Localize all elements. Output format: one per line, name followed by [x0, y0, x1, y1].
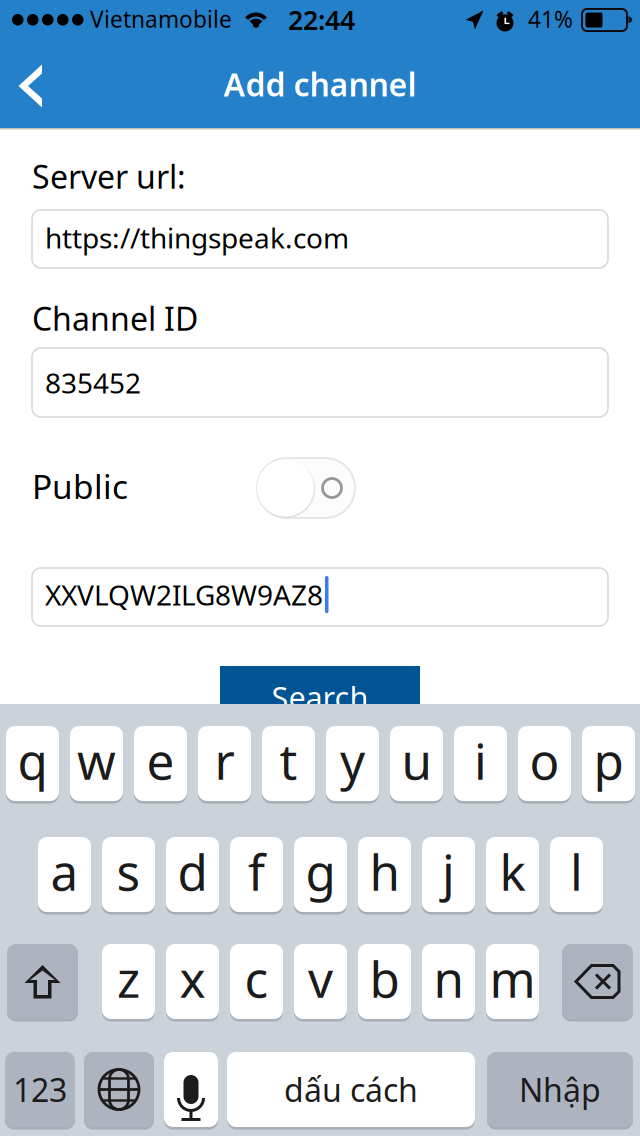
staticText: b — [369, 946, 399, 1011]
button[interactable]: l — [550, 837, 603, 912]
staticText: 22:44 — [288, 2, 355, 37]
staticText: p — [593, 728, 623, 793]
staticText: i — [474, 728, 487, 793]
button[interactable]: XXVLQW2ILG8W9AZ8 — [32, 568, 608, 626]
staticText: r — [214, 728, 234, 793]
staticText: f — [248, 839, 265, 904]
button[interactable]: f — [230, 837, 283, 912]
button[interactable]: z — [102, 944, 155, 1019]
staticText: 835452 — [45, 364, 141, 401]
button[interactable]: Delete — [562, 944, 633, 1019]
staticText: Server url: — [32, 155, 186, 197]
staticText: c — [244, 946, 268, 1011]
button[interactable]: u — [390, 726, 443, 801]
button[interactable]: j — [422, 837, 475, 912]
staticText: 123 — [13, 1068, 67, 1111]
button[interactable]: Nhập — [487, 1052, 633, 1127]
button[interactable]: o — [518, 726, 571, 801]
staticText: XXVLQW2ILG8W9AZ8 — [45, 576, 323, 613]
staticText: h — [369, 839, 399, 904]
button[interactable]: t — [262, 726, 315, 801]
staticText: m — [489, 946, 535, 1011]
staticText: 41% — [528, 4, 573, 34]
staticText: Vietnamobile — [90, 4, 232, 34]
staticText: l — [570, 839, 583, 904]
staticText: n — [433, 946, 463, 1011]
button[interactable]: w — [70, 726, 123, 801]
staticText: https://thingspeak.com — [45, 219, 349, 256]
staticText: dấu cách — [284, 1068, 418, 1111]
staticText: w — [77, 728, 116, 793]
button[interactable]: 835452 — [32, 348, 608, 417]
button[interactable]: b — [358, 944, 411, 1019]
staticText: o — [529, 728, 559, 793]
button[interactable]: e — [134, 726, 187, 801]
button[interactable]: v — [294, 944, 347, 1019]
button[interactable]: https://thingspeak.com — [32, 210, 608, 268]
staticText: t — [279, 728, 297, 793]
staticText: j — [442, 839, 455, 904]
button[interactable]: g — [294, 837, 347, 912]
button[interactable]: 123 — [5, 1052, 75, 1127]
button[interactable]: m — [486, 944, 539, 1019]
button[interactable]: y — [326, 726, 379, 801]
button[interactable]: dấu cách — [227, 1052, 475, 1127]
button[interactable]: i — [454, 726, 507, 801]
button[interactable]: d — [166, 837, 219, 912]
staticText: x — [179, 946, 205, 1011]
button[interactable]: Dictation — [164, 1052, 218, 1127]
button[interactable]: Next keyboard — [84, 1052, 154, 1127]
staticText: Nhập — [519, 1068, 601, 1111]
button[interactable]: a — [38, 837, 91, 912]
button[interactable]: x — [166, 944, 219, 1019]
staticText: g — [305, 839, 335, 904]
staticText: d — [177, 839, 207, 904]
staticText: y — [340, 728, 365, 793]
staticText: e — [146, 728, 174, 793]
button[interactable]: h — [358, 837, 411, 912]
staticText: Add channel — [223, 63, 416, 105]
button[interactable]: Back — [0, 40, 76, 128]
button[interactable]: s — [102, 837, 155, 912]
button[interactable]: r — [198, 726, 251, 801]
button[interactable]: k — [486, 837, 539, 912]
button[interactable]: Search — [220, 666, 420, 728]
staticText: q — [17, 728, 47, 793]
button[interactable]: p — [582, 726, 635, 801]
button[interactable]: Public, off — [257, 458, 355, 518]
button[interactable]: Shift — [7, 944, 78, 1019]
staticText: a — [50, 839, 78, 904]
staticText: Channel ID — [32, 297, 198, 339]
button[interactable]: n — [422, 944, 475, 1019]
staticText: Search — [271, 677, 368, 717]
button[interactable]: c — [230, 944, 283, 1019]
staticText: Public — [32, 464, 128, 508]
staticText: u — [401, 728, 431, 793]
staticText: v — [308, 946, 333, 1011]
staticText: s — [116, 839, 140, 904]
staticText: k — [499, 839, 525, 904]
button[interactable]: q — [6, 726, 59, 801]
staticText: z — [117, 946, 140, 1011]
